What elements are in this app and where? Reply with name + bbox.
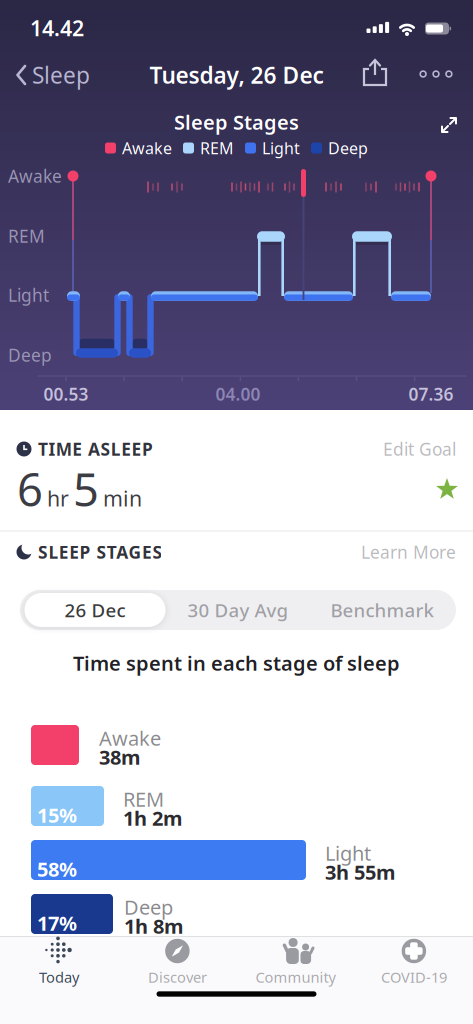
button[interactable]: Today (4, 934, 114, 990)
staticText: SLEEP STAGES (38, 540, 162, 563)
button[interactable]: 30 Day Avg (168, 590, 308, 630)
button[interactable] (413, 59, 459, 89)
staticText: 00.53 (43, 382, 88, 405)
staticText: 07.36 (408, 382, 453, 405)
button[interactable] (360, 58, 390, 88)
staticText: Discover (148, 967, 207, 987)
staticText: Tuesday, 26 Dec (149, 60, 323, 90)
button[interactable]: COVID-19 (359, 934, 469, 990)
staticText: 17% (37, 910, 77, 936)
staticText: Awake (122, 137, 172, 159)
staticText: Sleep (32, 60, 90, 90)
staticText: Awake (99, 725, 161, 751)
staticText: 1h 2m (123, 805, 183, 831)
staticText: 38m (99, 744, 141, 770)
staticText: 6 (17, 459, 43, 519)
staticText: Deep (124, 894, 173, 920)
button[interactable]: Discover (122, 934, 232, 990)
staticText: Deep (328, 137, 368, 159)
staticText: Light (8, 283, 49, 306)
staticText: Learn More (361, 540, 456, 563)
staticText: REM (200, 137, 234, 159)
staticText: Today (39, 967, 79, 987)
staticText: 1h 8m (124, 913, 184, 939)
staticText: 3h 55m (325, 859, 396, 885)
button[interactable]: Sleep (13, 55, 93, 95)
staticText: TIME ASLEEP (38, 437, 153, 460)
staticText: Time spent in each stage of sleep (73, 650, 400, 676)
staticText: Sleep Stages (174, 109, 299, 135)
button[interactable]: Community (241, 934, 351, 990)
staticText: 30 Day Avg (187, 598, 288, 622)
staticText: Benchmark (330, 598, 433, 622)
staticText: Awake (8, 164, 62, 187)
staticText: Community (256, 967, 336, 987)
staticText: Edit Goal (383, 437, 456, 460)
staticText: 15% (37, 802, 77, 828)
staticText: 14.42 (30, 14, 84, 42)
staticText: REM (123, 786, 164, 812)
staticText: 58% (37, 856, 77, 882)
staticText: Deep (8, 343, 52, 366)
staticText: hr (47, 484, 69, 512)
button[interactable]: Benchmark (312, 590, 452, 630)
staticText: min (103, 484, 142, 512)
button[interactable]: Learn More (356, 540, 456, 563)
staticText: COVID-19 (381, 967, 447, 987)
button[interactable]: 26 Dec (24, 593, 165, 627)
staticText: Light (262, 137, 300, 159)
staticText: Light (325, 840, 371, 866)
staticText: 04.00 (215, 382, 260, 405)
button[interactable]: Edit Goal (356, 437, 456, 460)
staticText: 26 Dec (64, 598, 125, 622)
staticText: 5 (73, 459, 99, 519)
staticText: REM (8, 224, 45, 247)
